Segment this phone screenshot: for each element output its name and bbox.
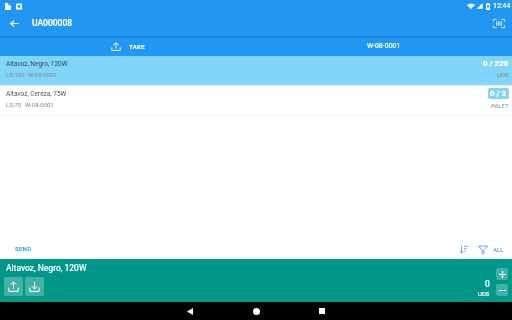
staticText: LS-75 (6, 101, 22, 108)
button[interactable]: Place item (25, 277, 44, 296)
button[interactable]: Decrease (496, 284, 508, 296)
button[interactable]: Back (4, 15, 24, 35)
staticText: PALET (491, 102, 509, 109)
button[interactable]: ALL (493, 240, 504, 258)
staticText: Altavoz, Negro, 120W (6, 60, 68, 68)
staticText: Altavoz, Negro, 120W (6, 263, 87, 273)
button[interactable]: Scan barcode (491, 17, 507, 33)
button[interactable]: W-08-0001 (256, 36, 512, 56)
button[interactable]: Back (182, 303, 198, 319)
staticText: UDS (478, 290, 490, 297)
staticText: UDS (497, 71, 509, 78)
button[interactable]: Sort (457, 243, 470, 256)
staticText: W-08-0001 (28, 71, 57, 78)
staticText: W-08-0001 (25, 101, 54, 108)
staticText: 0 / 220 (483, 59, 509, 68)
button[interactable]: Take item (4, 277, 23, 296)
staticText: 0 / 2 (490, 89, 507, 98)
staticText: SEND (15, 245, 32, 252)
button[interactable]: Recent apps (314, 303, 330, 319)
staticText: LS-120 (6, 71, 25, 78)
staticText: Altavoz, Cereza, 75W (6, 90, 67, 98)
staticText: 12:44 (493, 2, 511, 10)
button[interactable]: Altavoz, Cereza, 75W (0, 86, 512, 115)
button[interactable]: Home (248, 303, 264, 319)
staticText: ALL (493, 246, 504, 253)
staticText: W-08-0001 (367, 42, 401, 50)
staticText: UA000008 (32, 18, 73, 28)
button[interactable]: Filter (476, 243, 489, 256)
button[interactable]: Altavoz, Negro, 120W (0, 56, 512, 85)
staticText: TAKE (129, 43, 146, 50)
button[interactable]: TAKE (0, 36, 256, 56)
button[interactable]: SEND (15, 241, 32, 259)
button[interactable]: Increase (496, 268, 508, 280)
staticText: 0 (485, 279, 490, 289)
